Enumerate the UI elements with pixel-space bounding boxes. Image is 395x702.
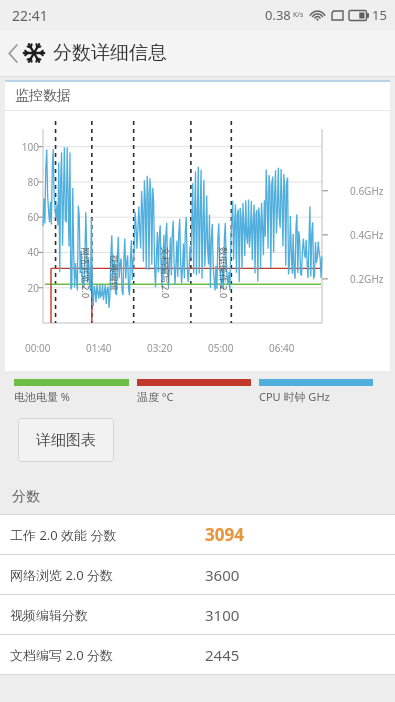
staticText: 3100	[205, 605, 240, 625]
staticText: 22:41	[12, 6, 48, 25]
staticText: 文档编写 2.0	[160, 247, 172, 299]
staticText: 00:00	[25, 341, 51, 355]
staticText: 2445	[205, 645, 240, 665]
staticText: K/s	[293, 10, 304, 20]
staticText: 80	[13, 175, 39, 189]
staticText: 视频编辑	[108, 254, 119, 290]
button[interactable]: Back	[0, 30, 395, 76]
button[interactable]: 工作 2.0 效能 分数	[0, 515, 395, 554]
staticText: 工作 2.0 效能 分数	[10, 526, 205, 544]
staticText: 0.6GHz	[350, 184, 384, 198]
staticText: 详细图表	[36, 431, 96, 450]
staticText: CPU 时钟 GHz	[259, 389, 330, 404]
staticText: 网络浏览 2.0	[80, 247, 92, 299]
staticText: 15	[372, 6, 387, 24]
staticText: 03:20	[147, 341, 173, 355]
staticText: 20	[13, 281, 39, 295]
staticText: 分数	[12, 488, 40, 506]
staticText: 文档编写 2.0 分数	[10, 646, 205, 664]
button[interactable]: 视频编辑分数	[0, 595, 395, 634]
staticText: 0.4GHz	[350, 228, 384, 242]
staticText: 3094	[205, 523, 244, 546]
staticText: 分数详细信息	[53, 41, 167, 65]
staticText: 3600	[205, 565, 240, 585]
staticText: 06:40	[269, 341, 295, 355]
button[interactable]: 网络浏览 2.0 分数	[0, 555, 395, 594]
staticText: 05:00	[208, 341, 234, 355]
staticText: 01:40	[86, 341, 112, 355]
staticText: 100	[13, 140, 39, 154]
staticText: 视频编辑分数	[10, 607, 205, 623]
staticText: 60	[13, 210, 39, 224]
button[interactable]: 详细图表	[18, 418, 114, 462]
staticText: 40	[13, 245, 39, 259]
staticText: 电池电量 %	[14, 389, 71, 404]
staticText: 数据操作 2.0	[218, 247, 230, 299]
button[interactable]: 文档编写 2.0 分数	[0, 635, 395, 674]
staticText: 0.38	[265, 6, 291, 24]
staticText: 监控数据	[15, 87, 71, 105]
staticText: 0.2GHz	[350, 272, 384, 286]
staticText: 网络浏览 2.0 分数	[10, 566, 205, 584]
staticText: 温度 °C	[137, 389, 174, 404]
